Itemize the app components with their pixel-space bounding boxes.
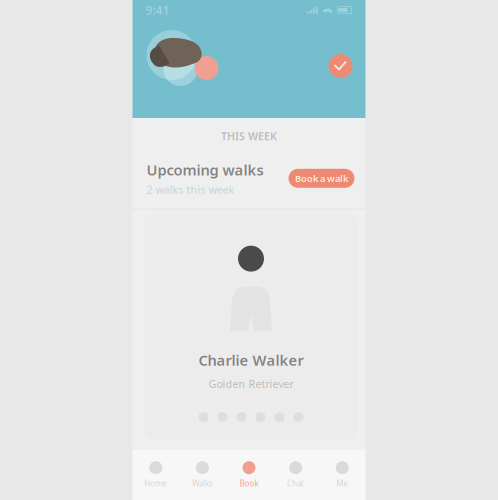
button[interactable]: Walks xyxy=(179,450,226,500)
button[interactable]: Book a walk xyxy=(288,169,354,188)
button[interactable]: Action 6 xyxy=(293,411,304,424)
staticText: Book a walk xyxy=(295,172,348,184)
button[interactable]: Chat xyxy=(272,450,319,500)
staticText: Walks xyxy=(192,478,213,489)
staticText: Upcoming walks xyxy=(146,160,263,179)
button[interactable]: THIS WEEK xyxy=(207,130,291,142)
button[interactable]: Account xyxy=(324,50,356,82)
staticText: Charlie Walker xyxy=(198,350,303,370)
staticText: Book xyxy=(239,478,258,489)
button[interactable]: Home xyxy=(132,450,179,500)
staticText: THIS WEEK xyxy=(221,129,277,143)
button[interactable]: Action 5 xyxy=(274,411,285,424)
staticText: 2 walks this week xyxy=(146,182,234,197)
button[interactable]: Me xyxy=(319,450,365,500)
button[interactable]: Action 4 xyxy=(255,411,266,424)
button[interactable]: Book xyxy=(226,450,272,500)
staticText: 9:41 xyxy=(145,2,169,18)
button[interactable]: Action 2 xyxy=(217,411,228,424)
button[interactable]: Action 3 xyxy=(236,411,247,424)
staticText: Home xyxy=(144,478,167,489)
button[interactable]: Action 1 xyxy=(198,411,209,424)
staticText: Chat xyxy=(287,478,304,489)
staticText: Golden Retriever xyxy=(208,377,293,391)
staticText: Me xyxy=(336,478,348,489)
